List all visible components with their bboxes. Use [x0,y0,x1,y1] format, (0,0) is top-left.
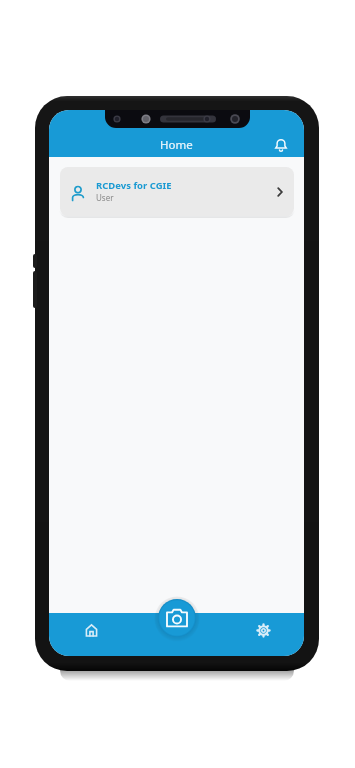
button[interactable] [79,618,103,642]
staticText: User [96,192,114,203]
button[interactable]: RCDevs for CGIE [60,167,294,216]
staticText: RCDevs for CGIE [96,179,172,192]
button[interactable] [270,134,292,156]
staticText: Home [160,137,193,153]
button[interactable] [251,618,275,642]
button[interactable] [158,599,196,637]
